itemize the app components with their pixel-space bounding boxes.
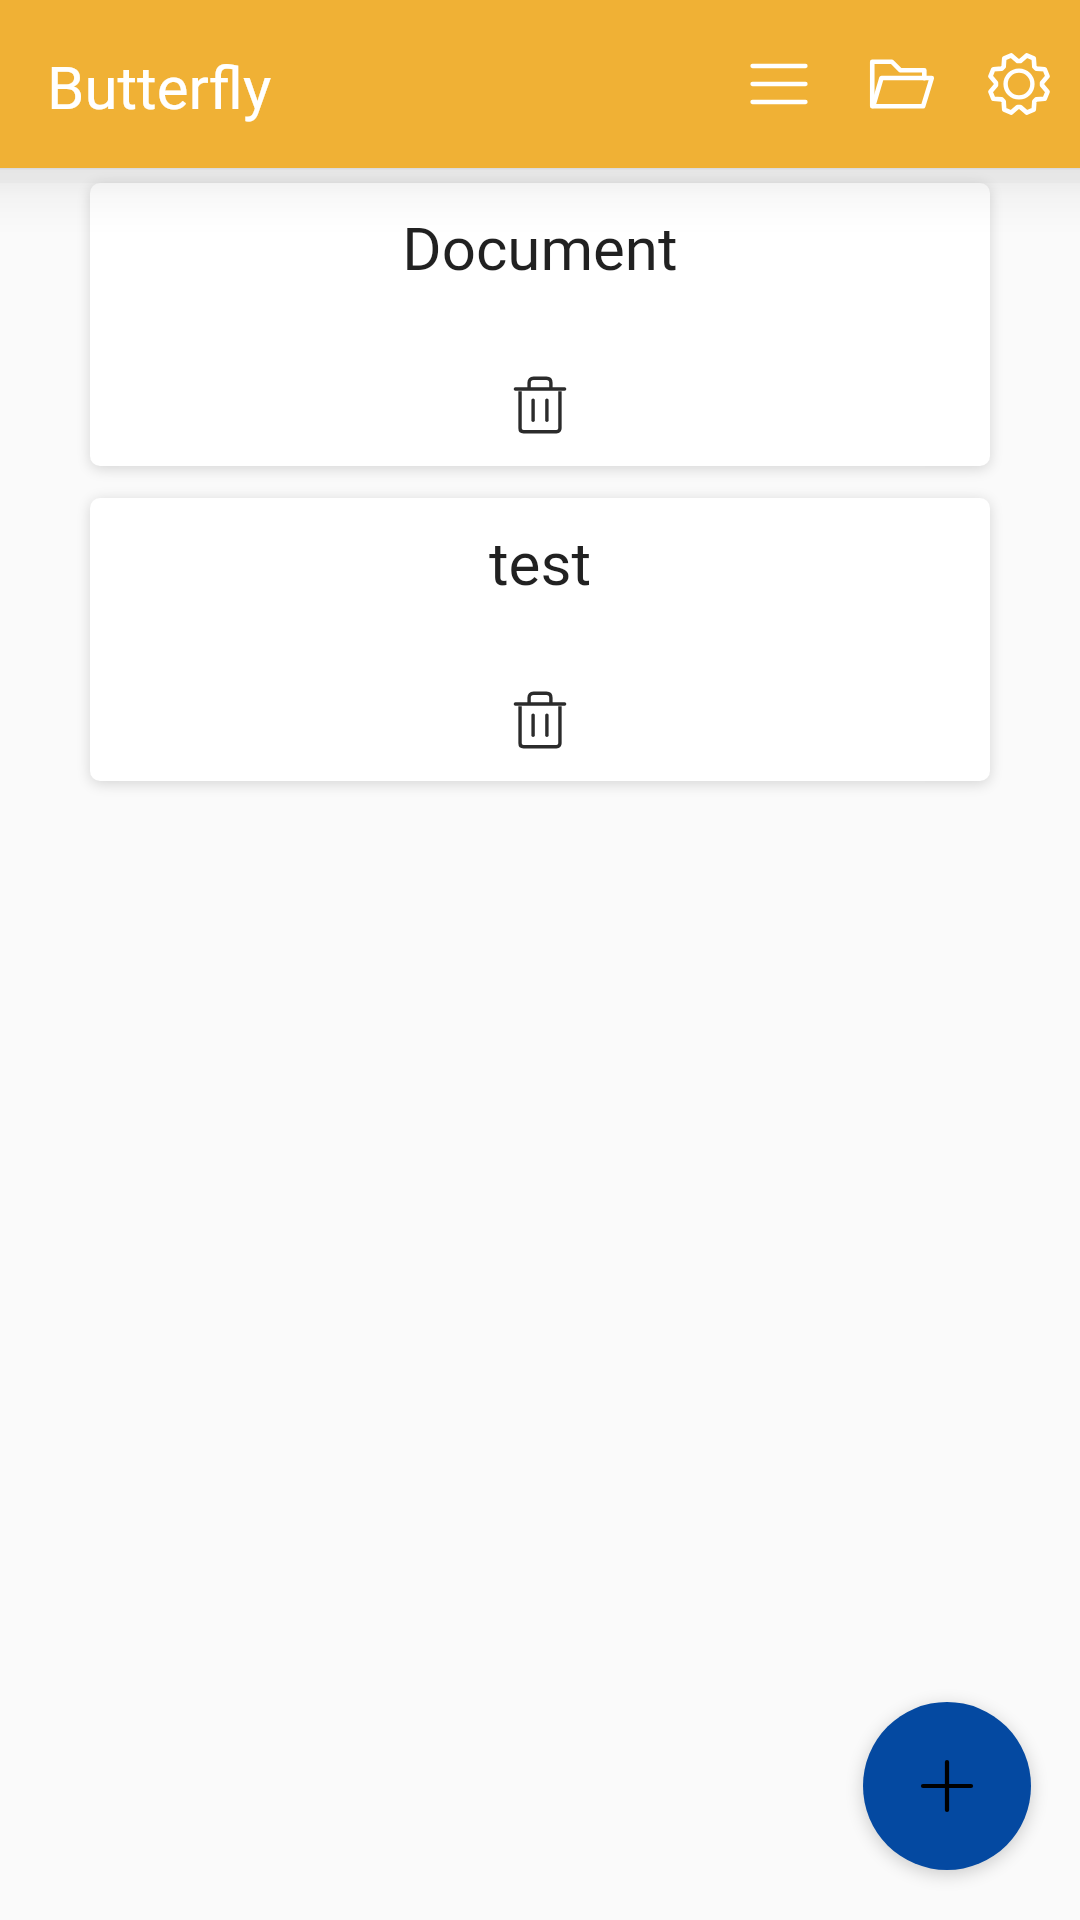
button[interactable]: Add bbox=[863, 1702, 1031, 1870]
staticText: Document bbox=[90, 214, 990, 284]
button[interactable]: Delete bbox=[495, 360, 585, 450]
button[interactable]: Settings bbox=[965, 30, 1073, 138]
button[interactable]: test bbox=[90, 498, 990, 781]
button[interactable]: Delete bbox=[495, 675, 585, 765]
button[interactable]: Document bbox=[90, 183, 990, 466]
button[interactable]: Open folder bbox=[848, 30, 956, 138]
staticText: Butterfly bbox=[47, 53, 272, 123]
staticText: test bbox=[90, 529, 990, 599]
button[interactable]: Menu bbox=[725, 30, 833, 138]
